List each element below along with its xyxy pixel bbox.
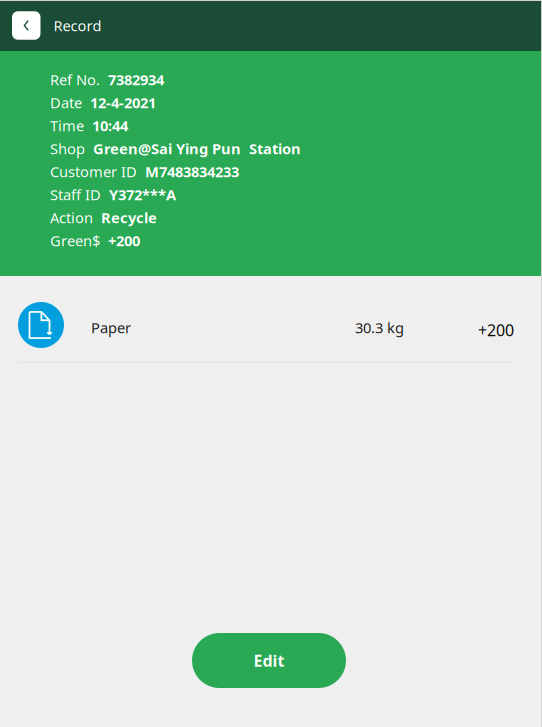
button[interactable]: Edit	[192, 633, 346, 688]
staticText: 10:44	[92, 116, 128, 135]
staticText: 30.3 kg	[355, 318, 404, 337]
staticText: Ref No.	[50, 70, 100, 89]
staticText: Recycle	[101, 208, 157, 227]
staticText: Y372***A	[109, 185, 176, 204]
button[interactable]: Back	[12, 11, 40, 40]
button[interactable]: Paper	[0, 276, 542, 362]
staticText: M7483834233	[145, 162, 239, 181]
staticText: Record	[53, 16, 101, 35]
staticText: Edit	[253, 650, 284, 671]
staticText: +200	[478, 319, 514, 341]
staticText: Green@Sai Ying Pun Station	[93, 139, 301, 158]
staticText: Shop	[50, 139, 85, 158]
staticText: Staff ID	[50, 185, 101, 204]
staticText: Time	[50, 116, 84, 135]
staticText: 7382934	[108, 70, 164, 89]
staticText: 12-4-2021	[90, 93, 156, 112]
staticText: Customer ID	[50, 162, 137, 181]
staticText: Paper	[91, 318, 131, 337]
staticText: +200	[108, 231, 140, 250]
staticText: Green$	[50, 231, 100, 250]
staticText: Date	[50, 93, 82, 112]
staticText: Action	[50, 208, 93, 227]
